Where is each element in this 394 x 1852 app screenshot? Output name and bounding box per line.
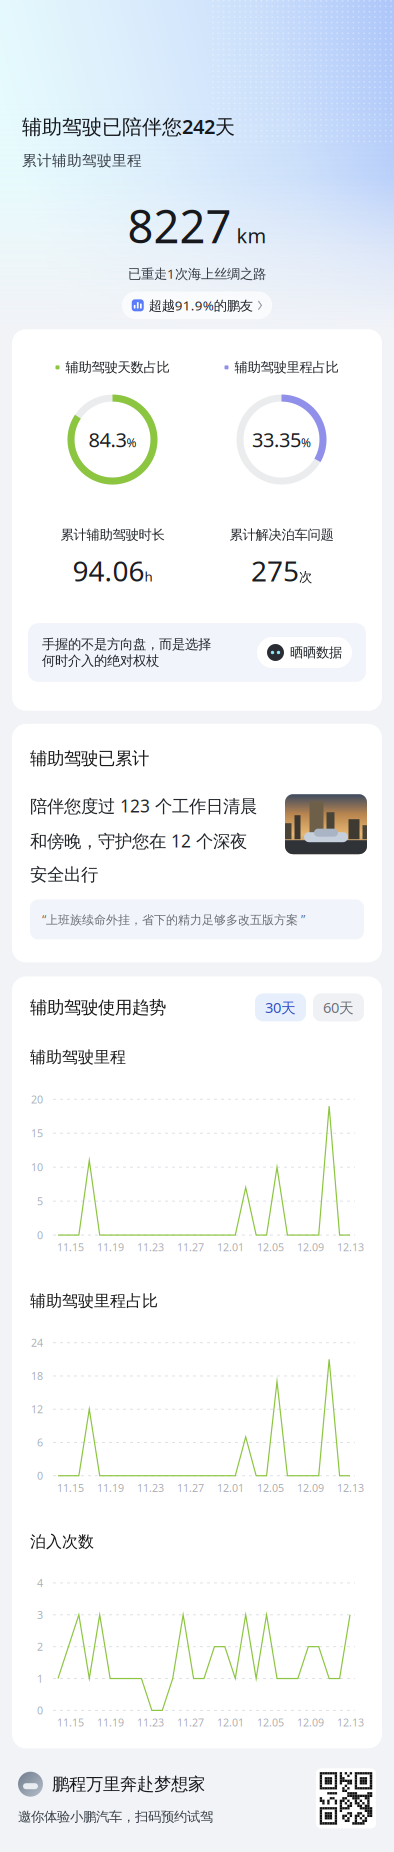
staticText: 辅助驾驶里程占比 <box>30 1291 158 1311</box>
staticText: 3 <box>37 1608 43 1622</box>
staticText: “上班族续命外挂，省下的精力足够多改五版方案 ” <box>42 911 305 927</box>
staticText: 12.13 <box>337 1715 364 1730</box>
staticText: 辅助驾驶使用趋势 <box>30 997 166 1018</box>
staticText: 10 <box>31 1160 43 1174</box>
staticText: 11.15 <box>57 1240 84 1254</box>
staticText: 辅助驾驶天数占比 <box>65 359 169 376</box>
staticText: 12.13 <box>337 1481 364 1495</box>
staticText: 12.05 <box>257 1481 284 1495</box>
button[interactable]: 超越91.9%的鹏友 <box>122 291 272 319</box>
staticText: 辅助驾驶已陪伴您242天 <box>22 113 235 140</box>
staticText: km <box>236 222 266 249</box>
staticText: 84.3 <box>88 426 126 453</box>
staticText: 累计解决泊车问题 <box>229 527 333 543</box>
staticText: 泊入次数 <box>30 1532 94 1551</box>
staticText: 安全出行 <box>30 864 98 885</box>
staticText: 次 <box>299 569 312 585</box>
staticText: 12.09 <box>297 1481 324 1495</box>
staticText: 11.23 <box>137 1240 164 1254</box>
staticText: % <box>126 435 136 451</box>
staticText: 手握的不是方向盘，而是选择 何时介入的绝对权杖 <box>42 636 211 669</box>
staticText: 275 <box>251 552 299 589</box>
staticText: 11.19 <box>97 1240 124 1254</box>
staticText: 5 <box>37 1194 43 1208</box>
staticText: 11.19 <box>97 1481 124 1495</box>
staticText: 15 <box>31 1126 43 1140</box>
staticText: 已重走1次海上丝绸之路 <box>128 265 266 282</box>
staticText: 累计辅助驾驶里程 <box>22 152 142 170</box>
staticText: 11.23 <box>137 1715 164 1730</box>
staticText: % <box>301 435 311 451</box>
staticText: 20 <box>31 1092 43 1106</box>
staticText: 0 <box>37 1469 43 1483</box>
staticText: 12.05 <box>257 1715 284 1730</box>
staticText: 1 <box>37 1671 43 1686</box>
staticText: 12.09 <box>297 1715 324 1730</box>
staticText: 12.01 <box>217 1715 244 1730</box>
staticText: 12.09 <box>297 1240 324 1254</box>
staticText: 4 <box>37 1576 43 1590</box>
staticText: 辅助驾驶里程 <box>30 1047 126 1067</box>
staticText: 邀你体验小鹏汽车，扫码预约试驾 <box>18 1809 213 1825</box>
staticText: 0 <box>37 1703 43 1717</box>
staticText: 12.01 <box>217 1240 244 1254</box>
staticText: 12 <box>31 1402 43 1416</box>
staticText: 18 <box>31 1369 43 1383</box>
staticText: 11.27 <box>177 1240 204 1254</box>
staticText: 11.27 <box>177 1481 204 1495</box>
staticText: 60天 <box>323 998 354 1017</box>
staticText: 0 <box>37 1228 43 1242</box>
staticText: 30天 <box>265 998 296 1017</box>
staticText: 12.05 <box>257 1240 284 1254</box>
staticText: 辅助驾驶里程占比 <box>234 359 338 376</box>
staticText: 24 <box>31 1336 43 1350</box>
button[interactable]: 60天 <box>313 993 364 1021</box>
staticText: 11.27 <box>177 1715 204 1730</box>
button[interactable]: 晒晒数据 <box>257 637 352 668</box>
staticText: 33.35 <box>252 426 301 453</box>
staticText: 12.01 <box>217 1481 244 1495</box>
staticText: 超越91.9%的鹏友 <box>149 296 253 314</box>
staticText: 累计辅助驾驶时长 <box>60 527 164 543</box>
staticText: 11.23 <box>137 1481 164 1495</box>
staticText: 晒晒数据 <box>290 644 342 661</box>
staticText: 11.15 <box>57 1715 84 1730</box>
staticText: 8227 <box>127 196 231 256</box>
staticText: 11.15 <box>57 1481 84 1495</box>
staticText: 辅助驾驶已累计 <box>30 748 149 769</box>
staticText: 12.13 <box>337 1240 364 1254</box>
staticText: 和傍晚，守护您在 12 个深夜 <box>30 829 247 852</box>
staticText: 94.06 <box>72 552 144 589</box>
staticText: 11.19 <box>97 1715 124 1730</box>
staticText: 6 <box>37 1435 43 1450</box>
staticText: 2 <box>37 1640 43 1654</box>
button[interactable]: 30天 <box>255 993 306 1021</box>
staticText: 陪伴您度过 123 个工作日清晨 <box>30 794 257 817</box>
staticText: h <box>144 567 152 585</box>
staticText: 鹏程万里奔赴梦想家 <box>52 1774 205 1795</box>
